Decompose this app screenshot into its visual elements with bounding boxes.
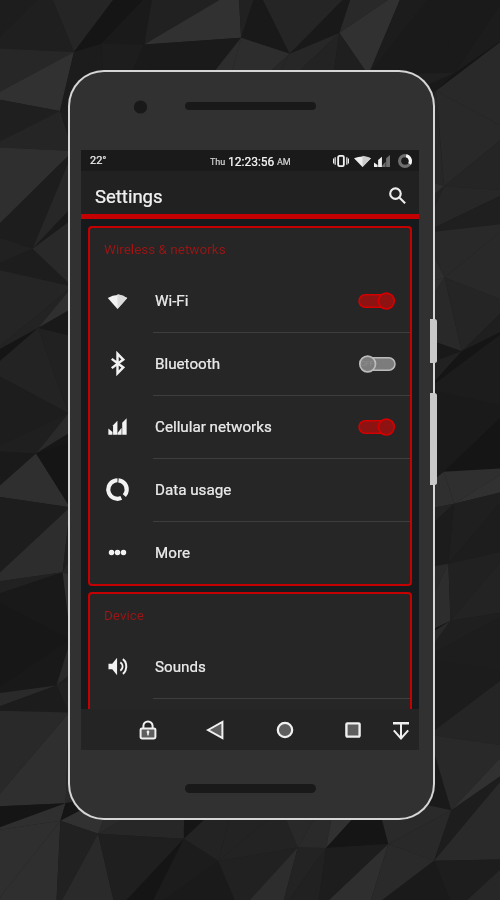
staticText: Cellular networks: [155, 418, 272, 436]
button[interactable]: Sounds: [90, 635, 410, 698]
staticText: Display: [155, 714, 205, 732]
button[interactable]: Cellular networks: [90, 395, 410, 458]
staticText: OFF: [361, 360, 374, 368]
staticText: ON: [382, 297, 392, 305]
button[interactable]: Back: [197, 709, 235, 750]
staticText: Device: [104, 607, 144, 623]
staticText: Sounds: [155, 658, 206, 676]
staticText: Wi‑Fi: [155, 292, 189, 310]
staticText: ON: [382, 423, 392, 431]
staticText: 22°: [90, 154, 107, 167]
staticText: 12:23:56: [228, 155, 275, 169]
staticText: Bluetooth: [155, 355, 221, 373]
staticText: Thu: [210, 157, 226, 168]
button[interactable]: Home: [266, 709, 304, 750]
button[interactable]: Recents: [334, 709, 372, 750]
button[interactable]: Hide navigation bar: [382, 709, 420, 750]
button[interactable]: Lock: [129, 709, 167, 750]
button[interactable]: Wi‑Fi: [90, 269, 410, 332]
button[interactable]: Search: [384, 182, 410, 208]
staticText: Data usage: [155, 481, 232, 499]
button[interactable]: Bluetooth: [90, 332, 410, 395]
button[interactable]: Display: [90, 698, 410, 748]
staticText: Wireless & networks: [104, 241, 226, 257]
staticText: More: [155, 544, 190, 562]
staticText: Settings: [95, 186, 163, 208]
button[interactable]: Data usage: [90, 458, 410, 521]
button[interactable]: More: [90, 521, 410, 584]
staticText: AM: [277, 157, 291, 168]
